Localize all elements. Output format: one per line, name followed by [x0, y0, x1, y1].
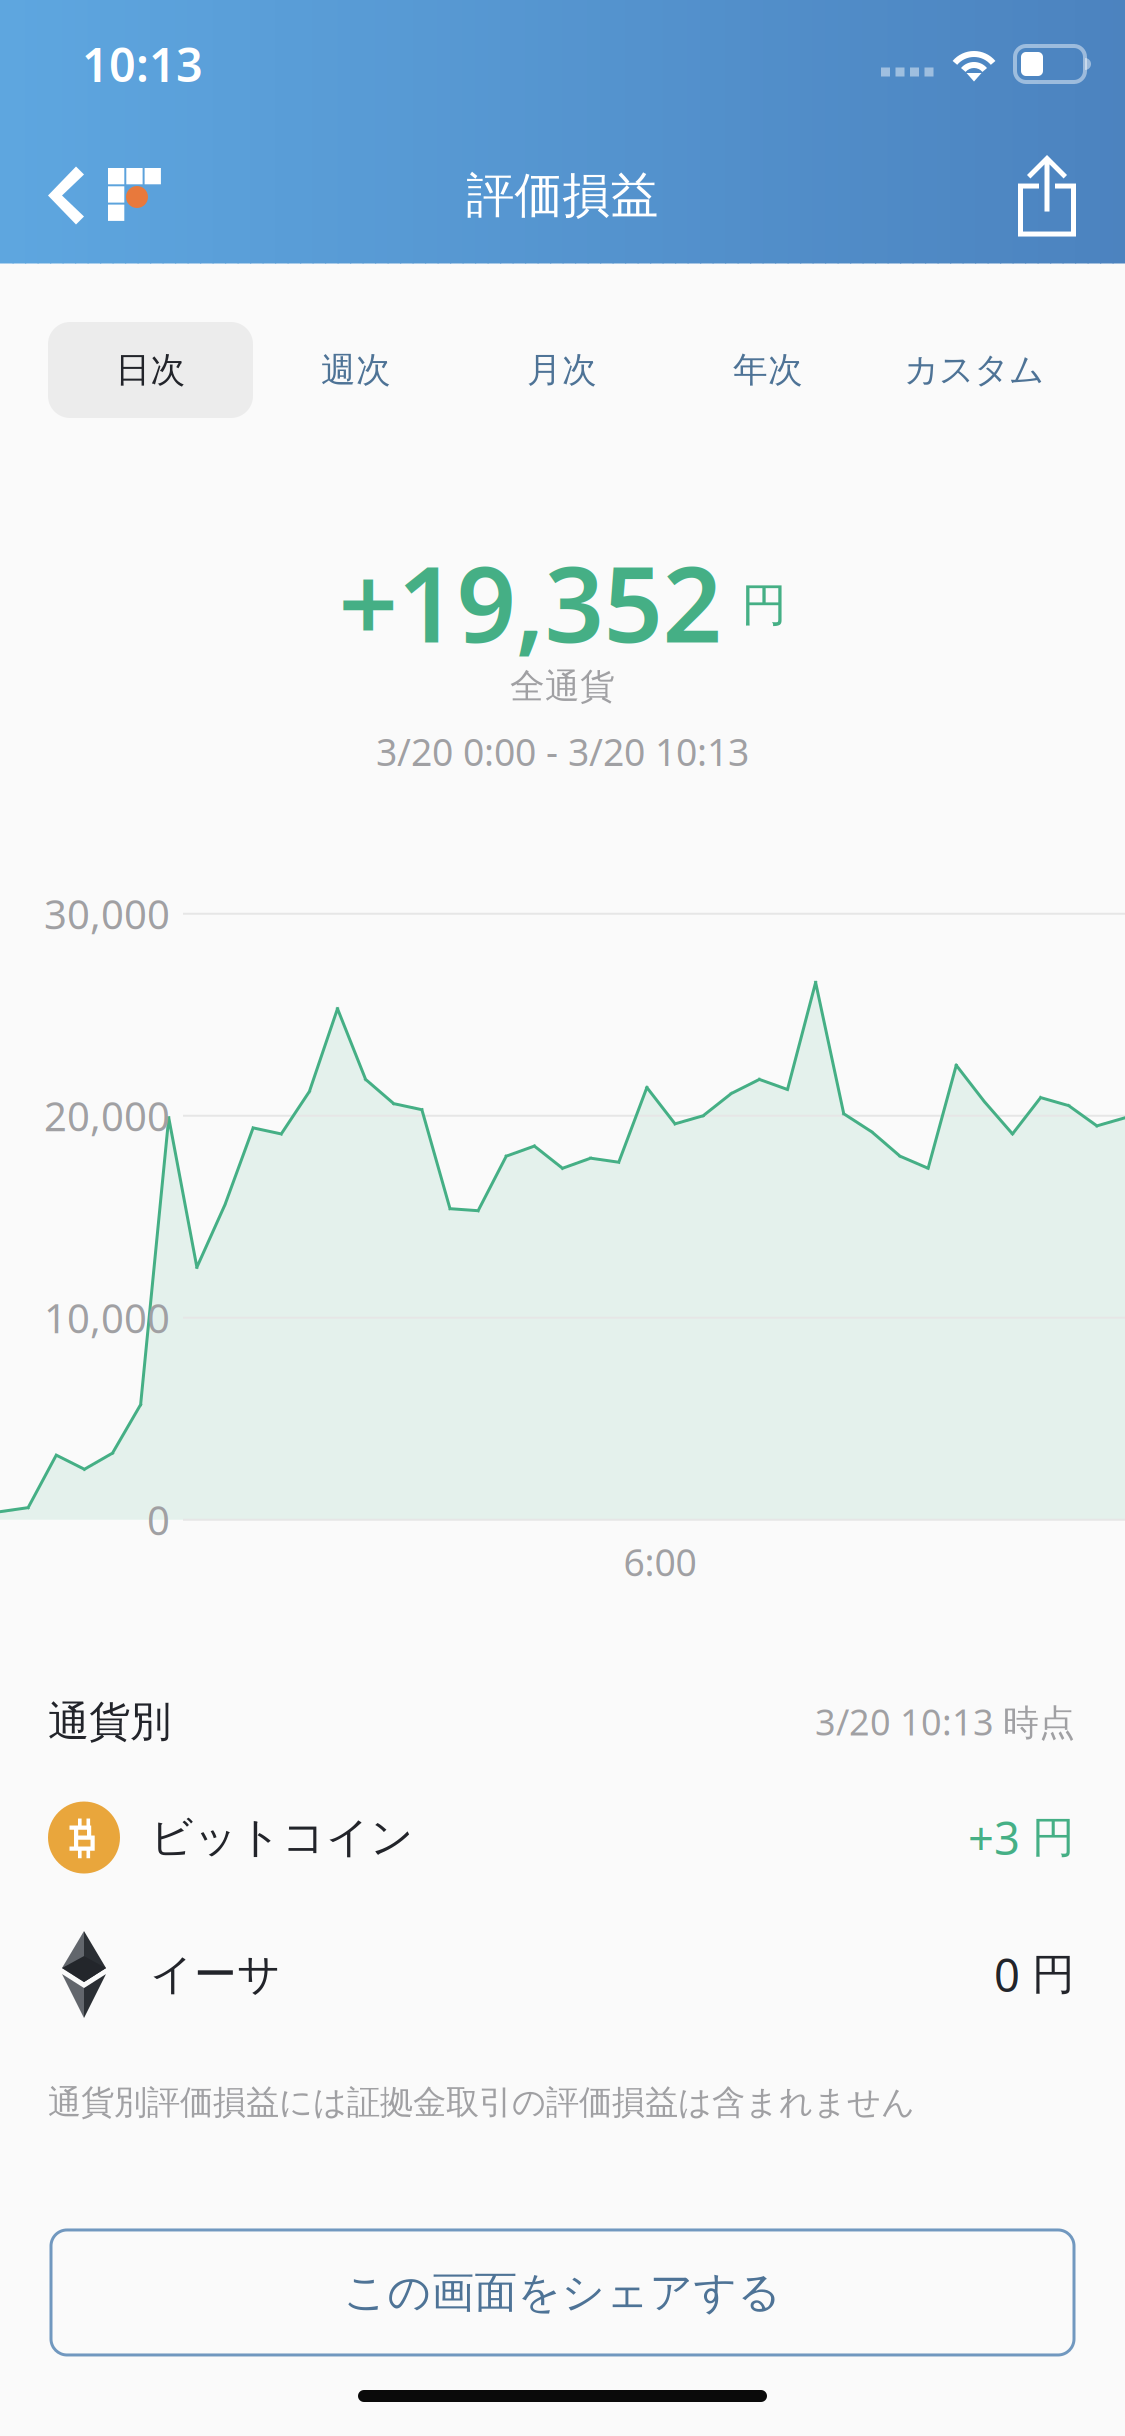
staticText: 年次	[733, 349, 803, 391]
staticText: 全通貨	[510, 665, 615, 708]
button[interactable]: Share	[997, 135, 1097, 255]
staticText: +19,352	[338, 533, 721, 671]
staticText: 円	[1032, 1948, 1075, 2001]
button[interactable]: 日次	[48, 322, 253, 418]
staticText: 週次	[321, 349, 391, 391]
staticText: 3/20 10:13 時点	[815, 1698, 1075, 1745]
staticText: 円	[1032, 1811, 1075, 1864]
button[interactable]: 年次	[665, 322, 871, 418]
staticText: カスタム	[904, 349, 1044, 391]
button[interactable]: ビットコイン	[0, 1769, 1125, 1906]
staticText: +3	[968, 1807, 1020, 1868]
staticText: イーサ	[150, 1948, 281, 2001]
button[interactable]: 週次	[253, 322, 459, 418]
staticText: ビットコイン	[150, 1811, 414, 1864]
staticText: 20,000	[44, 1089, 170, 1142]
staticText: 0	[994, 1944, 1020, 2005]
button[interactable]: カスタム	[871, 322, 1077, 418]
staticText: 通貨別	[48, 1696, 171, 1747]
staticText: この画面をシェアする	[343, 2266, 781, 2319]
button[interactable]: この画面をシェアする	[51, 2230, 1074, 2355]
staticText: 通貨別評価損益には証拠金取引の評価損益は含まれません	[48, 2082, 915, 2123]
staticText: 3/20 0:00 - 3/20 10:13	[376, 727, 749, 776]
staticText: 日次	[115, 349, 185, 391]
staticText: 月次	[527, 349, 597, 391]
staticText: 評価損益	[466, 166, 658, 225]
staticText: 円	[741, 577, 786, 633]
staticText: 0	[147, 1493, 170, 1546]
button[interactable]: イーサ	[0, 1906, 1125, 2043]
button[interactable]: 月次	[459, 322, 665, 418]
staticText: 6:00	[623, 1537, 696, 1587]
button[interactable]: Back	[44, 135, 167, 255]
staticText: 10:13	[82, 33, 203, 95]
staticText: 30,000	[44, 887, 170, 940]
staticText: 10,000	[44, 1291, 170, 1344]
